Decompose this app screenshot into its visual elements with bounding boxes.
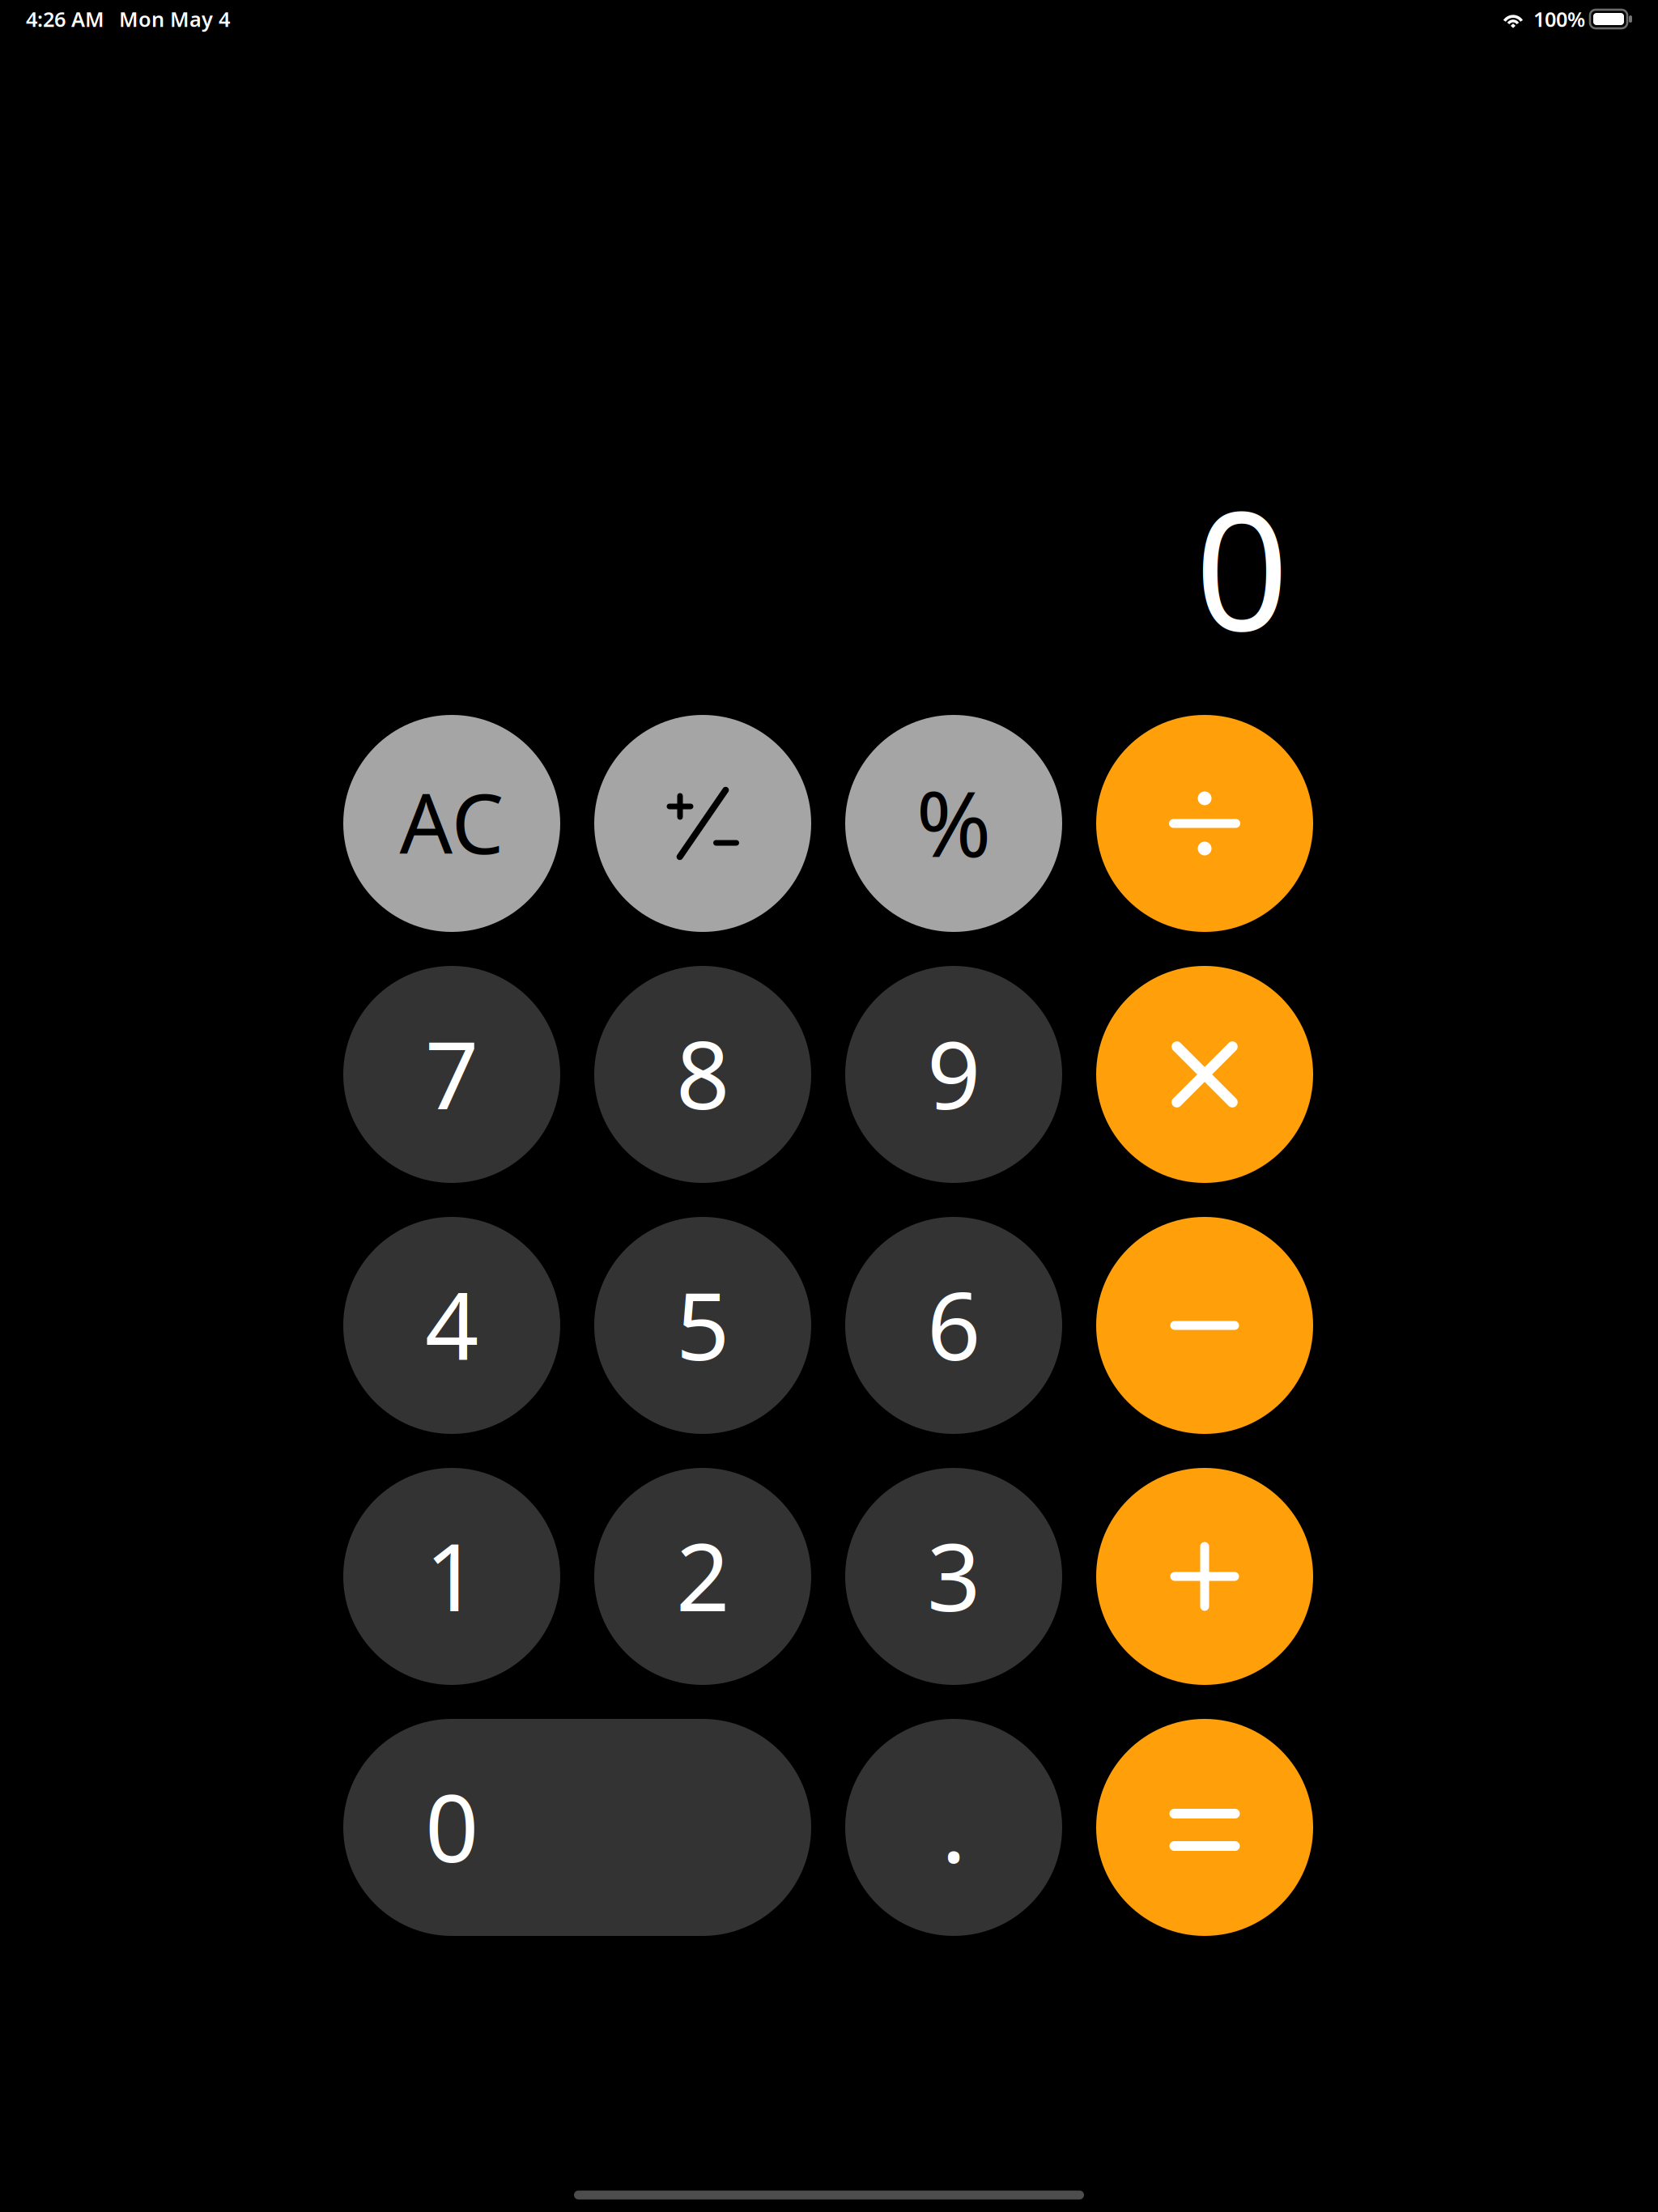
staticText: 0 (1195, 458, 1289, 676)
button[interactable]: Equals (1096, 1719, 1313, 1936)
staticText: 3 (927, 1512, 980, 1637)
staticText: 7 (425, 1010, 478, 1135)
button[interactable]: 5 (594, 1217, 811, 1434)
button[interactable]: . (845, 1719, 1062, 1936)
button[interactable]: AC (343, 715, 560, 932)
button[interactable]: 1 (343, 1468, 560, 1685)
button[interactable]: 6 (845, 1217, 1062, 1434)
staticText: . (941, 1763, 966, 1888)
staticText: 9 (927, 1010, 980, 1135)
button[interactable]: 2 (594, 1468, 811, 1685)
button[interactable]: 7 (343, 966, 560, 1183)
button[interactable]: Plus (1096, 1468, 1313, 1685)
button[interactable]: Minus (1096, 1217, 1313, 1434)
button[interactable]: % (845, 715, 1062, 932)
button[interactable]: 8 (594, 966, 811, 1183)
staticText: 5 (676, 1261, 729, 1386)
staticText: Mon May 4 (119, 5, 230, 33)
staticText: 6 (927, 1261, 980, 1386)
staticText: % (916, 762, 991, 882)
staticText: AC (400, 767, 504, 877)
staticText: 4:26 AM (26, 5, 104, 33)
button[interactable]: 0 (343, 1719, 811, 1936)
staticText: 4 (425, 1261, 478, 1386)
staticText: 0 (425, 1763, 478, 1888)
staticText: 1 (425, 1512, 478, 1637)
button[interactable]: 4 (343, 1217, 560, 1434)
staticText: 8 (676, 1010, 729, 1135)
button[interactable]: Plus Minus (594, 715, 811, 932)
staticText: 2 (676, 1512, 729, 1637)
button[interactable]: Multiply (1096, 966, 1313, 1183)
button[interactable]: 9 (845, 966, 1062, 1183)
staticText: 100% (1533, 5, 1585, 33)
button[interactable]: 3 (845, 1468, 1062, 1685)
button[interactable]: Divide (1096, 715, 1313, 932)
